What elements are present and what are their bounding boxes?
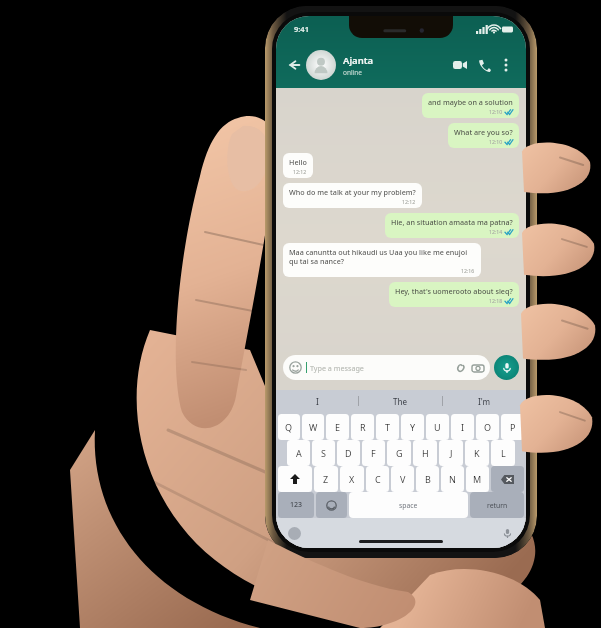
staticText: D [345,447,352,459]
button[interactable]: E [326,414,349,440]
button[interactable]: C [366,466,389,492]
staticText: S [321,447,326,459]
staticText: N [449,473,456,485]
button[interactable]: What are you so? [448,123,519,148]
button[interactable]: R [351,414,374,440]
button[interactable]: K [465,440,489,466]
button[interactable]: Voice message [494,355,519,380]
button[interactable]: Back [284,55,304,75]
button[interactable]: Shift [278,466,312,492]
staticText: A [296,447,302,459]
staticText: V [400,473,406,485]
button[interactable]: Q [278,414,300,440]
button[interactable]: space [349,492,468,518]
staticText: online [343,68,362,77]
staticText: J [450,447,453,459]
button[interactable]: N [441,466,464,492]
staticText: X [349,473,355,485]
button[interactable]: return [470,492,524,518]
staticText: 9:41 [294,24,309,34]
button[interactable]: Video call [448,53,472,77]
button[interactable]: M [466,466,489,492]
staticText: I [461,421,465,433]
button[interactable]: X [340,466,364,492]
staticText: G [396,447,403,459]
button[interactable]: Keyboard settings [288,527,301,540]
staticText: The [393,396,408,407]
staticText: 12:10 [489,108,503,115]
button[interactable]: F [362,440,385,466]
button[interactable]: Hey, that's uomerooto about sleq? [389,282,519,307]
button[interactable]: Emoji [316,492,347,518]
button[interactable]: Numbers [278,492,314,518]
button[interactable] [306,50,336,80]
button[interactable]: More options [496,55,516,75]
staticText: 12:10 [489,138,503,145]
staticText: R [360,421,366,433]
staticText: B [425,473,431,485]
staticText: H [422,447,429,459]
staticText: space [399,501,418,510]
staticText: M [473,473,482,485]
button[interactable]: U [426,414,449,440]
staticText: E [335,421,341,433]
button[interactable]: Z [314,466,338,492]
staticText: Hey, that's uomerooto about sleq? [395,286,513,296]
button[interactable]: Backspace [491,466,524,492]
button[interactable]: I [451,414,474,440]
button[interactable]: Attach [454,362,466,374]
staticText: L [501,447,506,459]
staticText: Y [410,421,416,433]
button[interactable]: Camera [472,362,484,374]
button[interactable]: P [501,414,524,440]
button[interactable]: S [312,440,335,466]
button[interactable]: I [276,390,358,412]
staticText: I'm [478,396,491,407]
staticText: Z [323,473,329,485]
button[interactable]: Y [401,414,424,440]
button[interactable]: and maybe on a solution [422,93,519,118]
staticText: Q [285,421,293,433]
button[interactable]: V [391,466,414,492]
button[interactable]: Hello [283,153,313,178]
button[interactable]: Type a message [283,355,490,380]
button[interactable]: L [491,440,515,466]
button[interactable]: Hie, an situation amaata ma patna? [385,213,519,238]
button[interactable]: A [287,440,310,466]
staticText: and maybe on a solution [428,97,513,107]
staticText: Maa canuntta out hikaudi us Uaa you like… [289,247,475,266]
staticText: return [487,501,508,510]
staticText: 12:12 [402,198,416,205]
staticText: F [371,447,376,459]
staticText: W [309,421,318,433]
button[interactable]: Maa canuntta out hikaudi us Uaa you like… [283,243,481,277]
staticText: 12:14 [489,228,503,235]
staticText: K [474,447,480,459]
staticText: P [510,421,516,433]
staticText: 12:18 [489,297,503,304]
staticText: U [434,421,441,433]
button[interactable]: Dictation [501,527,514,540]
button[interactable]: The [359,390,442,412]
button[interactable]: O [476,414,499,440]
button[interactable]: J [439,440,463,466]
button[interactable]: Voice call [472,53,496,77]
button[interactable]: W [302,414,324,440]
staticText: T [385,421,391,433]
button[interactable]: D [337,440,360,466]
button[interactable]: T [376,414,399,440]
button[interactable]: B [416,466,439,492]
button[interactable]: Ajanta [343,54,448,77]
button[interactable]: I'm [443,390,526,412]
staticText: Who do me talk at your my problem? [289,187,416,197]
button[interactable]: Who do me talk at your my problem? [283,183,422,208]
staticText: Ajanta [343,54,374,67]
staticText: 12:16 [461,267,475,274]
staticText: O [484,421,492,433]
staticText: Hello [289,157,307,167]
button[interactable]: H [413,440,437,466]
button[interactable]: G [387,440,411,466]
staticText: Type a message [310,363,364,373]
staticText: 123 [290,500,303,510]
staticText: What are you so? [454,127,513,137]
